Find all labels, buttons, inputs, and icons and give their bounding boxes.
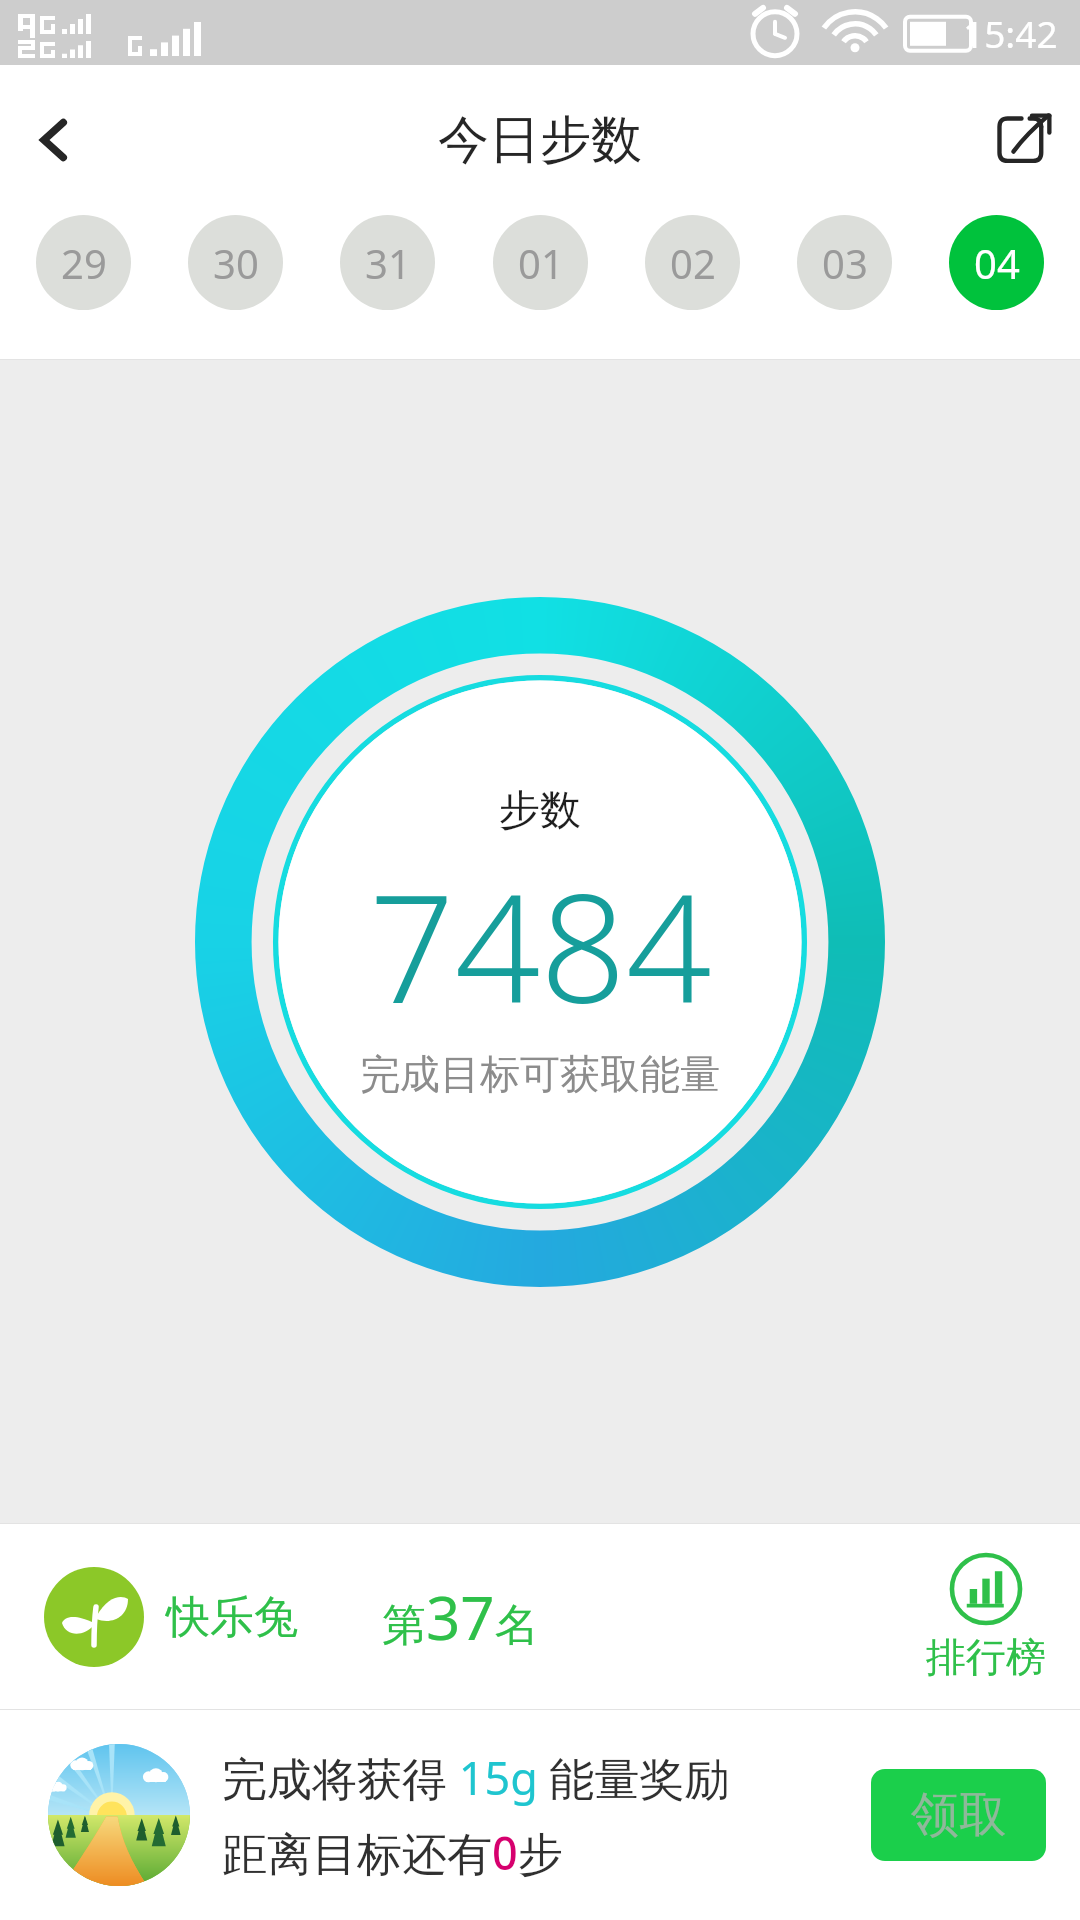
button[interactable]: 03 (797, 215, 892, 310)
button[interactable]: 排行榜 (926, 1552, 1046, 1682)
button[interactable]: 30 (188, 215, 283, 310)
button[interactable]: 快乐兔 (44, 1567, 298, 1667)
button[interactable]: 第37名 (382, 1576, 539, 1658)
button[interactable]: 领取 (871, 1769, 1046, 1861)
button[interactable]: 29 (36, 215, 131, 310)
button[interactable]: 02 (645, 215, 740, 310)
staticText: 7484 (369, 843, 712, 1047)
button[interactable]: Share (970, 85, 1080, 195)
staticText: 01 (518, 236, 564, 290)
button[interactable]: Back (0, 85, 110, 195)
staticText: 领取 (911, 1785, 1007, 1845)
staticText: 快乐兔 (166, 1590, 298, 1645)
staticText: 03 (822, 236, 868, 290)
button[interactable]: 04 (949, 215, 1044, 310)
staticText: 30 (213, 236, 259, 290)
staticText: 15:42 (963, 8, 1058, 58)
button[interactable]: 01 (493, 215, 588, 310)
staticText: 完成将获得 15g 能量奖励 (222, 1747, 730, 1808)
button[interactable] (44, 1740, 194, 1890)
staticText: 31 (365, 236, 411, 290)
staticText: 距离目标还有0步 (222, 1822, 563, 1883)
button[interactable]: 31 (340, 215, 435, 310)
staticText: 完成目标可获取能量 (360, 1049, 720, 1099)
staticText: 今日步数 (438, 108, 642, 172)
staticText: 第37名 (382, 1576, 539, 1658)
staticText: 排行榜 (926, 1632, 1046, 1682)
staticText: 02 (670, 236, 716, 290)
staticText: 步数 (499, 785, 581, 837)
staticText: 04 (974, 236, 1020, 290)
staticText: 29 (61, 236, 107, 290)
